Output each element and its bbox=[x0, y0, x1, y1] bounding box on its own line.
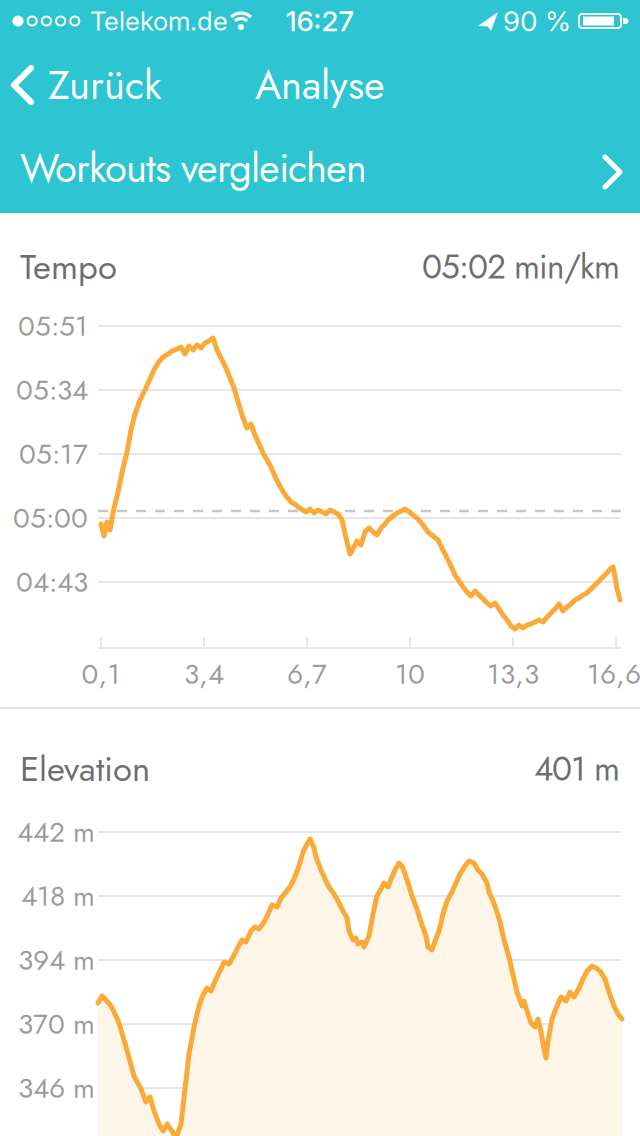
staticText: 05:34 bbox=[16, 370, 88, 410]
staticText: 442 m bbox=[17, 812, 95, 852]
staticText: 16:27 bbox=[285, 4, 354, 38]
staticText: 346 m bbox=[18, 1068, 95, 1108]
staticText: 370 m bbox=[18, 1004, 95, 1044]
staticText: 10 bbox=[395, 654, 425, 694]
staticText: 394 m bbox=[18, 940, 95, 980]
staticText: 6,7 bbox=[287, 654, 327, 694]
staticText: Telekom.de bbox=[90, 5, 228, 37]
staticText: 05:51 bbox=[18, 306, 88, 346]
button[interactable]: Zurück bbox=[10, 55, 210, 115]
staticText: Zurück bbox=[48, 56, 162, 114]
staticText: 05:02 min/km bbox=[422, 243, 620, 291]
staticText: 401 m bbox=[534, 745, 620, 793]
button[interactable]: Workouts vergleichen bbox=[0, 128, 640, 213]
staticText: Tempo bbox=[20, 242, 117, 292]
staticText: 04:43 bbox=[16, 562, 88, 602]
staticText: 05:17 bbox=[19, 434, 88, 474]
staticText: 3,4 bbox=[184, 654, 224, 694]
staticText: 0,1 bbox=[81, 654, 120, 694]
staticText: Elevation bbox=[20, 744, 150, 794]
staticText: Workouts vergleichen bbox=[20, 139, 367, 197]
staticText: 90 % bbox=[503, 4, 571, 38]
staticText: 16,6 bbox=[587, 654, 640, 694]
staticText: 13,3 bbox=[487, 654, 539, 694]
staticText: 418 m bbox=[21, 876, 95, 916]
staticText: 05:00 bbox=[13, 498, 88, 538]
staticText: Analyse bbox=[255, 56, 385, 114]
